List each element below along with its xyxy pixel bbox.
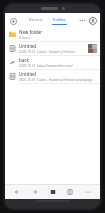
button[interactable]: Untitled	[5, 42, 100, 55]
button[interactable]: Recent	[26, 16, 45, 26]
staticText: Folder	[53, 17, 66, 23]
button[interactable]: Settings	[8, 16, 18, 26]
staticText: New folder	[19, 29, 43, 35]
button[interactable]: More	[82, 186, 94, 198]
button[interactable]: Tabs	[64, 186, 76, 198]
staticText: Untitled	[19, 71, 36, 77]
button[interactable]: Forward	[29, 186, 41, 198]
button[interactable]: back	[5, 56, 100, 69]
staticText: 2020.10.31 Cubot - Huawei p Horizon y.we…	[19, 78, 93, 82]
button[interactable]: Folder	[50, 16, 69, 26]
button[interactable]: More options	[78, 16, 87, 25]
staticText: 2020.10.31 Cubot - Huawei p Horizon	[19, 50, 76, 54]
button[interactable]: Account	[88, 16, 97, 25]
button[interactable]: Back	[11, 186, 23, 198]
staticText: 0 items	[19, 36, 30, 40]
staticText: 2020.10.31 https://www.video.com/	[19, 64, 73, 68]
staticText: Recent	[29, 17, 43, 23]
button[interactable]: Untitled	[5, 70, 100, 83]
button[interactable]: Home	[47, 186, 59, 198]
staticText: back	[19, 57, 29, 63]
button[interactable]: New folder	[5, 28, 100, 41]
staticText: Untitled	[19, 43, 36, 49]
